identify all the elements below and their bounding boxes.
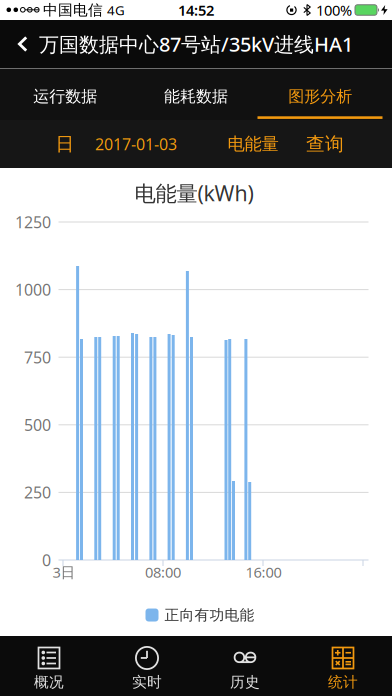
button[interactable]: 2017-01-03	[78, 120, 194, 168]
button[interactable]: 图形分析	[261, 68, 392, 120]
button[interactable]: 日	[43, 120, 87, 168]
staticText: 实时	[132, 673, 162, 691]
staticText: 运行数据	[33, 87, 97, 106]
staticText: 日	[55, 132, 74, 155]
staticText: 1000	[15, 279, 51, 300]
staticText: 14:52	[178, 0, 214, 20]
staticText: 500	[24, 414, 51, 435]
staticText: 历史	[230, 673, 260, 691]
button[interactable]: Back	[0, 20, 27, 68]
button[interactable]: 能耗数据	[131, 68, 261, 120]
staticText: 08:00	[145, 562, 181, 582]
staticText: 中国电信	[43, 1, 103, 19]
staticText: 250	[24, 482, 51, 503]
staticText: 2017-01-03	[95, 133, 177, 155]
staticText: 16:00	[245, 562, 281, 582]
button[interactable]: 运行数据	[0, 68, 131, 120]
staticText: 750	[24, 347, 51, 368]
button[interactable]: 概况	[0, 636, 98, 696]
button[interactable]: 实时	[98, 636, 196, 696]
staticText: 统计	[328, 673, 358, 691]
staticText: 100%	[316, 0, 352, 20]
staticText: 查询	[306, 132, 344, 155]
button[interactable]: 历史	[196, 636, 294, 696]
staticText: 电能量(kWh)	[134, 179, 253, 207]
staticText: 概况	[34, 673, 64, 691]
button[interactable]: 电能量	[223, 120, 283, 168]
staticText: 能耗数据	[164, 87, 228, 106]
staticText: 4G	[107, 1, 125, 19]
button[interactable]: 统计	[294, 636, 392, 696]
staticText: 万国数据中心87号站/35kV进线HA1	[39, 31, 353, 57]
staticText: 3日	[52, 562, 75, 582]
button[interactable]: 查询	[301, 120, 349, 168]
staticText: 电能量	[227, 133, 278, 155]
staticText: 0	[42, 549, 51, 571]
staticText: 1250	[15, 211, 51, 233]
staticText: 图形分析	[288, 87, 352, 106]
staticText: 正向有功电能	[164, 606, 254, 624]
